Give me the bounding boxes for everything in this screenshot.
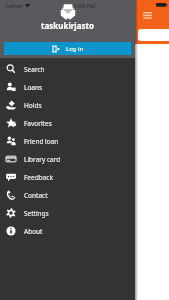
button[interactable]: Contact xyxy=(0,186,135,204)
button[interactable]: Search xyxy=(0,60,135,78)
button[interactable]: Settings xyxy=(0,204,135,222)
staticText: About xyxy=(24,227,43,236)
button[interactable]: Feedback xyxy=(0,168,135,186)
staticText: Friend loan xyxy=(24,137,59,146)
button[interactable]: Loans xyxy=(0,78,135,96)
button[interactable]: Favorites xyxy=(0,114,135,132)
staticText: Library card xyxy=(24,155,61,164)
button[interactable]: Open navigation menu xyxy=(143,12,152,20)
button[interactable]: Friend loan xyxy=(0,132,135,150)
staticText: Contact xyxy=(24,191,48,200)
button[interactable]: Holds xyxy=(0,96,135,114)
button[interactable]: About xyxy=(0,222,135,240)
button[interactable]: Search field xyxy=(138,29,169,41)
staticText: Carrier xyxy=(5,2,23,9)
button[interactable]: Log in xyxy=(4,42,131,55)
staticText: Search xyxy=(24,65,45,74)
staticText: Favorites xyxy=(24,119,52,128)
staticText: Log in xyxy=(66,45,84,53)
staticText: Settings xyxy=(24,209,49,218)
staticText: Loans xyxy=(24,83,43,92)
staticText: taskukirjasto xyxy=(41,20,95,31)
staticText: 6:09 PM xyxy=(74,2,95,9)
staticText: Feedback xyxy=(24,173,53,182)
staticText: Holds xyxy=(24,101,42,110)
button[interactable]: Library card xyxy=(0,150,135,168)
